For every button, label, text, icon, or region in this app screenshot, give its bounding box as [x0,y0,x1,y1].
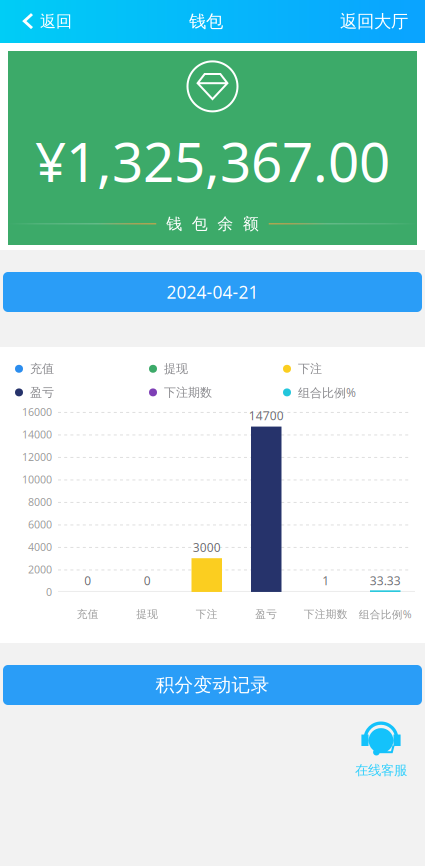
staticText: 充值 [30,361,54,376]
button[interactable]: 2024-04-21 [3,272,422,312]
button[interactable]: 积分变动记录 [3,665,422,705]
staticText: 下注期数 [304,608,348,621]
staticText: 4000 [28,540,52,554]
staticText: 0 [46,585,52,599]
button[interactable]: 在线客服 [355,719,425,778]
staticText: 33.33 [370,572,401,588]
staticText: 10000 [22,472,52,487]
button[interactable]: 返回大厅 [330,0,425,43]
staticText: 返回大厅 [340,11,408,32]
staticText: 提现 [164,361,188,376]
staticText: 盈亏 [255,608,277,621]
staticText: 6000 [28,517,52,532]
button[interactable]: 返回 [0,0,82,43]
staticText: 下注 [298,361,322,376]
staticText: 2024-04-21 [166,280,258,303]
staticText: 组合比例% [298,384,356,400]
staticText: 16000 [22,405,52,419]
staticText: 14000 [22,427,52,442]
staticText: 0 [84,572,91,588]
staticText: 2000 [28,562,52,577]
staticText: 下注期数 [164,385,212,400]
staticText: 组合比例% [359,607,412,621]
staticText: 钱包余额 [166,214,259,234]
staticText: 返回 [40,12,72,31]
staticText: 下注 [196,608,218,621]
staticText: 充值 [77,608,99,621]
staticText: 3000 [193,539,221,555]
staticText: ¥1,325,367.00 [35,124,390,197]
staticText: 钱包 [189,11,223,32]
staticText: 盈亏 [30,385,54,400]
staticText: 在线客服 [355,762,407,778]
staticText: 积分变动记录 [155,673,269,696]
staticText: 1 [322,572,329,588]
staticText: 0 [144,572,151,588]
staticText: 12000 [22,450,52,464]
staticText: 提现 [136,608,158,621]
staticText: 8000 [28,495,52,509]
staticText: 14700 [249,408,284,423]
